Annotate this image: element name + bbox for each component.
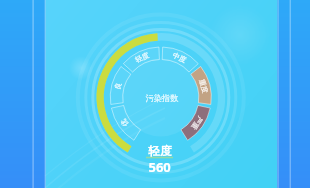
button[interactable]	[0, 0, 310, 188]
